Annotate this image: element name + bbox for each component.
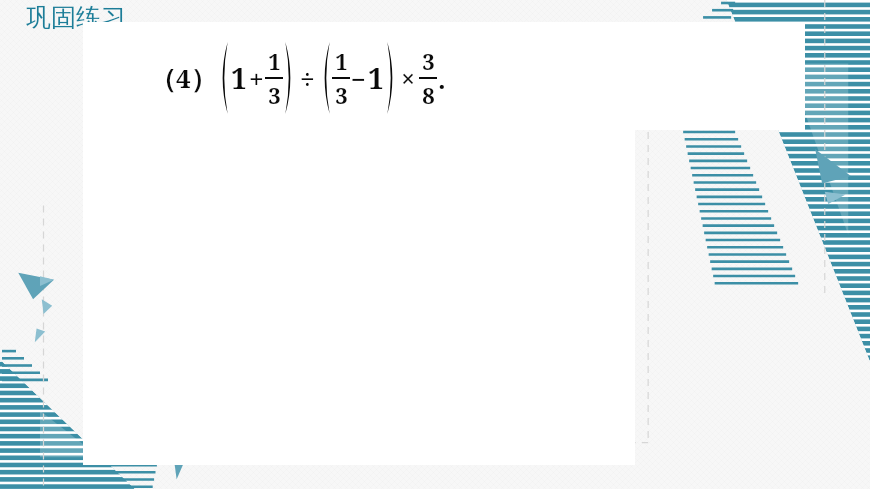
staticText: 1 [268, 46, 281, 76]
staticText: . [438, 61, 446, 96]
staticText: 1 [335, 46, 348, 76]
staticText: ÷ [300, 61, 315, 96]
staticText: − [351, 61, 366, 96]
staticText: × [401, 61, 416, 95]
staticText: 1 [231, 59, 247, 97]
staticText: （4） [150, 60, 217, 96]
staticText: + [249, 61, 264, 96]
staticText: 3 [335, 80, 348, 110]
staticText: 8 [422, 80, 435, 110]
staticText: 3 [268, 80, 281, 110]
staticText: 3 [422, 46, 435, 76]
staticText: 巩固练习 [26, 2, 126, 33]
staticText: 1 [368, 59, 384, 97]
button[interactable]: （4） [150, 42, 447, 114]
